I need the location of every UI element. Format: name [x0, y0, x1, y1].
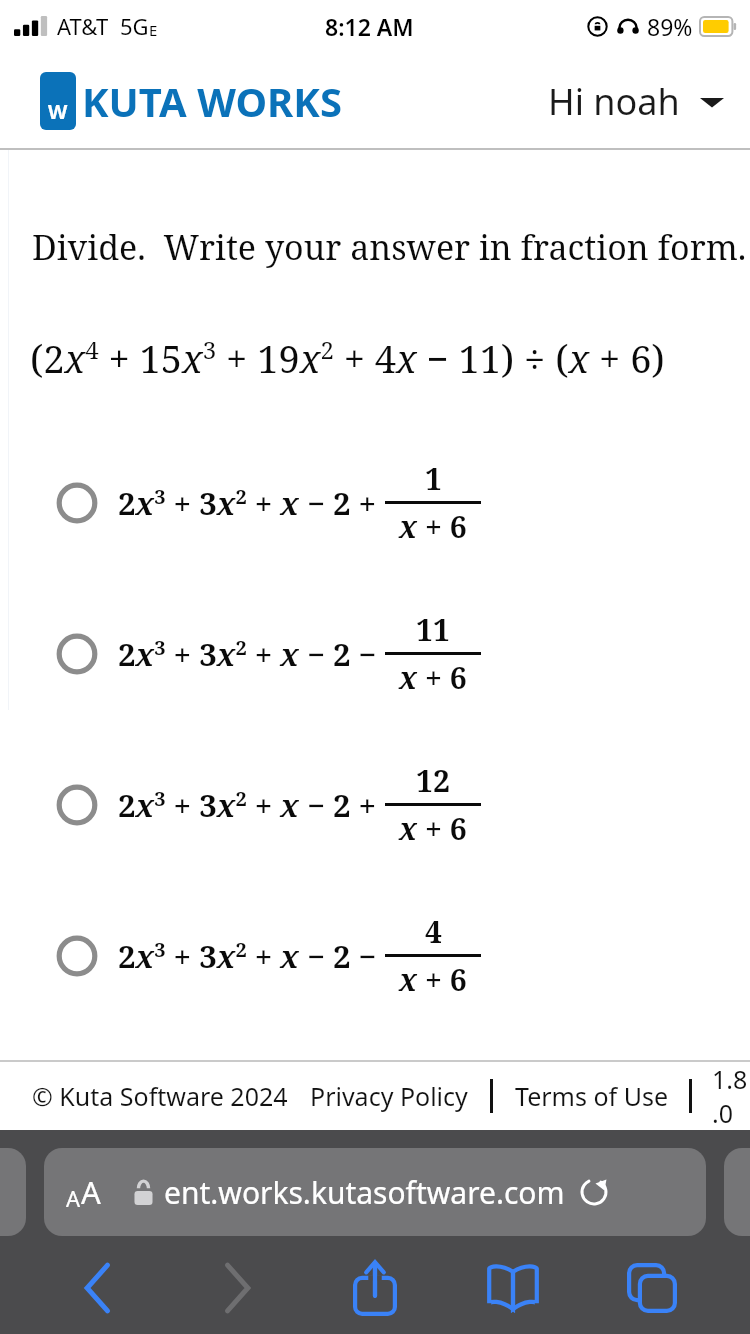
staticText: x + 6	[399, 657, 467, 698]
button[interactable]: 2x3 + 3x2 + x − 2 −	[0, 911, 750, 1000]
button[interactable]: 2x3 + 3x2 + x − 2 −	[0, 609, 750, 698]
staticText: 2x3 + 3x2 + x − 2 −	[118, 633, 385, 675]
button[interactable]: Share	[325, 1248, 425, 1328]
staticText: Privacy Policy	[310, 1079, 468, 1113]
staticText: Terms of Use	[515, 1079, 669, 1113]
staticText: W	[48, 98, 68, 125]
staticText: 2x3 + 3x2 + x − 2 −	[118, 935, 385, 977]
staticText: E	[149, 20, 158, 40]
staticText: A	[66, 1183, 81, 1213]
staticText: x + 6	[399, 808, 467, 849]
button[interactable]: Tabs	[602, 1248, 702, 1328]
button[interactable]: A	[44, 1148, 706, 1236]
button[interactable]: Hi noah	[548, 77, 724, 126]
staticText: Hi noah	[548, 77, 680, 126]
staticText: A	[81, 1171, 101, 1213]
staticText: 4	[425, 911, 442, 952]
staticText: x + 6	[399, 506, 467, 547]
staticText: ent.works.kutasoftware.com	[164, 1172, 565, 1213]
staticText: 1	[425, 458, 442, 499]
button[interactable]: 2x3 + 3x2 + x − 2 +	[0, 760, 750, 849]
button[interactable]: Terms of Use	[515, 1079, 669, 1113]
staticText: 2x3 + 3x2 + x − 2 +	[118, 482, 385, 524]
staticText: 11	[416, 609, 450, 650]
staticText: Divide. Write your answer in fraction fo…	[32, 224, 747, 270]
staticText: 12	[416, 760, 450, 801]
staticText: (2x4 + 15x3 + 19x2 + 4x − 11) ÷ (x + 6)	[30, 332, 665, 384]
staticText: 5G	[120, 11, 149, 41]
staticText: © Kuta Software 2024	[32, 1079, 288, 1113]
button[interactable]: Bookmarks	[463, 1248, 563, 1328]
button[interactable]: 2x3 + 3x2 + x − 2 +	[0, 458, 750, 547]
staticText: KUTA WORKS	[82, 74, 342, 128]
staticText: 89%	[647, 11, 693, 42]
staticText: 2x3 + 3x2 + x − 2 +	[118, 784, 385, 826]
button[interactable]: Back	[48, 1248, 148, 1328]
staticText: x + 6	[399, 959, 467, 1000]
staticText: AT&T	[57, 11, 109, 41]
button[interactable]: Kuta Works home	[40, 72, 342, 130]
button[interactable]: Forward	[187, 1248, 287, 1328]
button[interactable]: Privacy Policy	[310, 1079, 468, 1113]
staticText: 8:12 AM	[325, 11, 414, 42]
staticText: 1.8.0	[712, 1062, 750, 1130]
